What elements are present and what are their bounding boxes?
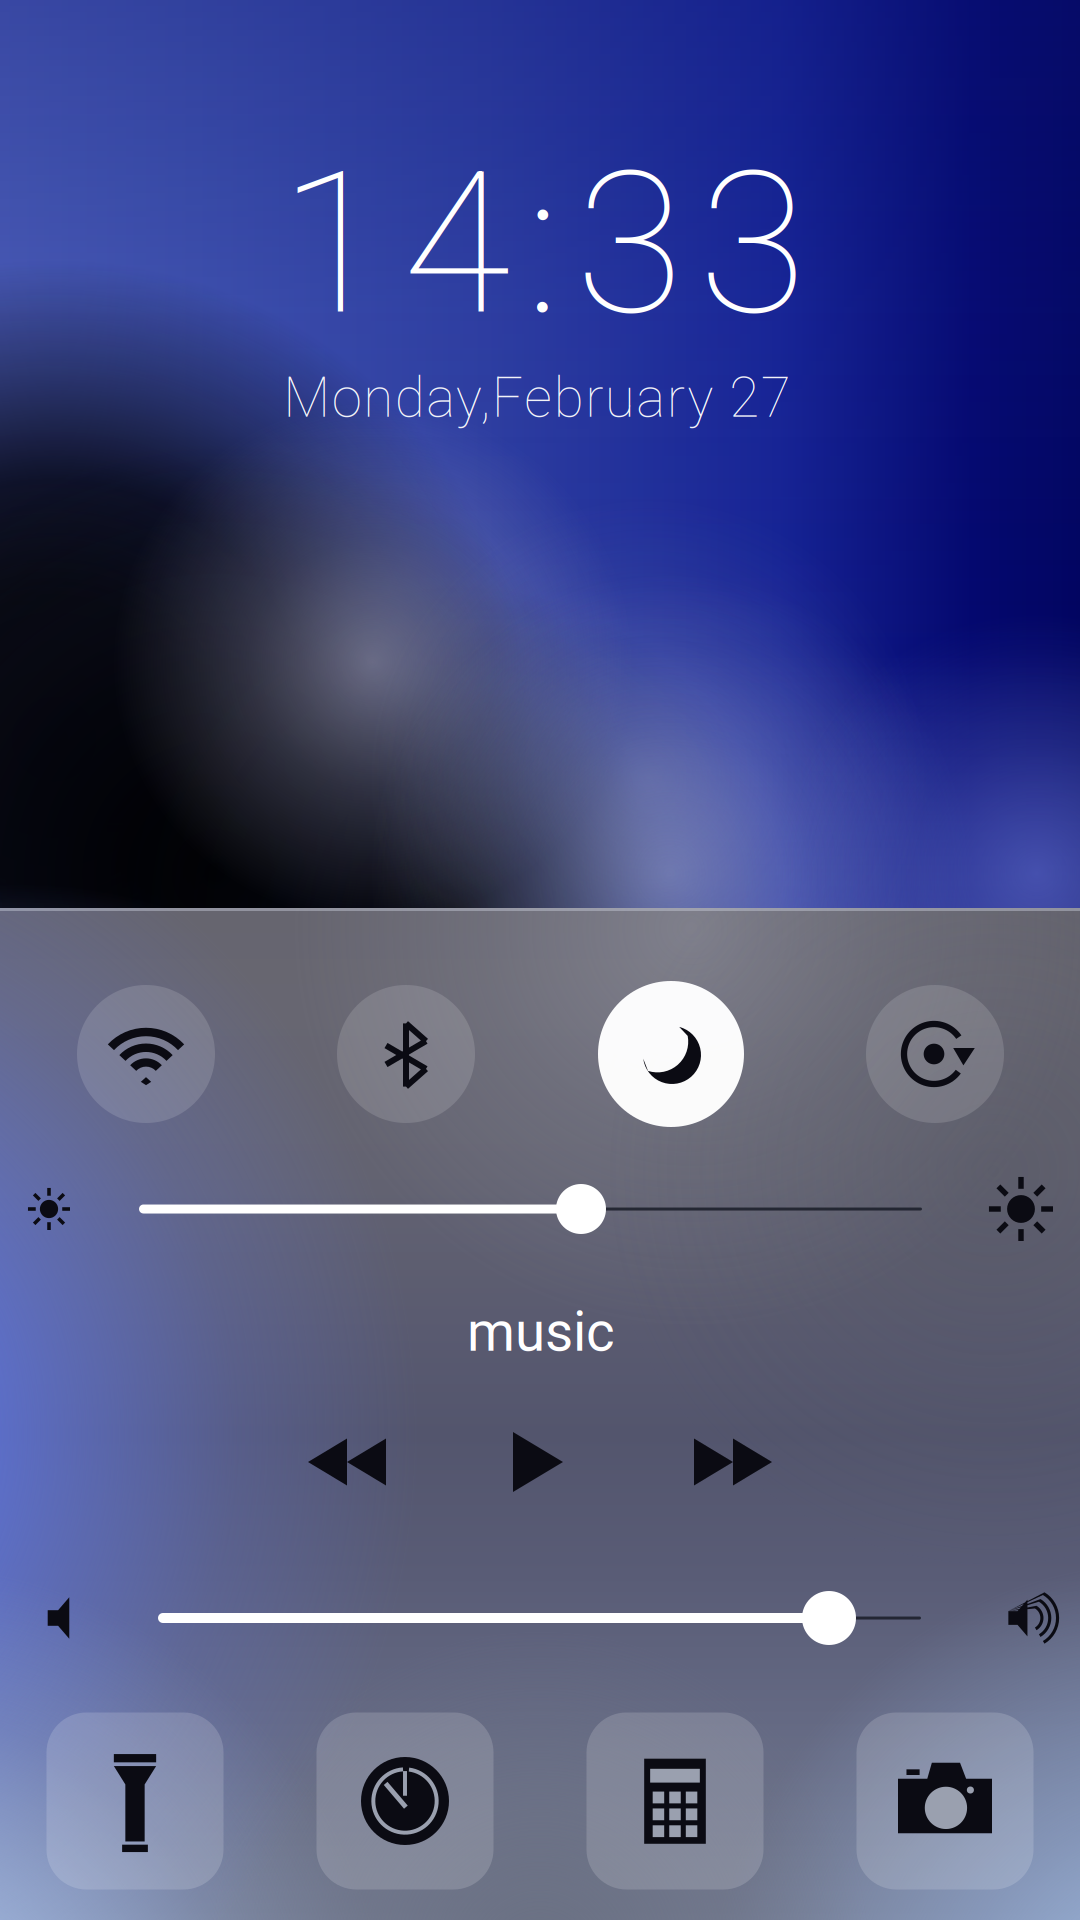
staticText: Monday,February 27 (283, 366, 791, 430)
button[interactable]: Flashlight (46, 1712, 223, 1889)
button[interactable]: Camera (856, 1712, 1033, 1889)
button[interactable]: Do Not Disturb (598, 981, 744, 1127)
button[interactable]: Rotation Lock (866, 985, 1004, 1123)
button[interactable]: Bluetooth (337, 985, 475, 1123)
staticText: 14:33 (279, 128, 806, 360)
button[interactable]: Wi-Fi (77, 985, 215, 1123)
staticText: music (467, 1300, 615, 1364)
button[interactable]: Calculator (586, 1712, 763, 1889)
button[interactable]: Play (468, 1402, 608, 1522)
button[interactable]: Next track (663, 1402, 803, 1522)
button[interactable]: Previous track (277, 1402, 417, 1522)
button[interactable]: Timer (316, 1712, 493, 1889)
